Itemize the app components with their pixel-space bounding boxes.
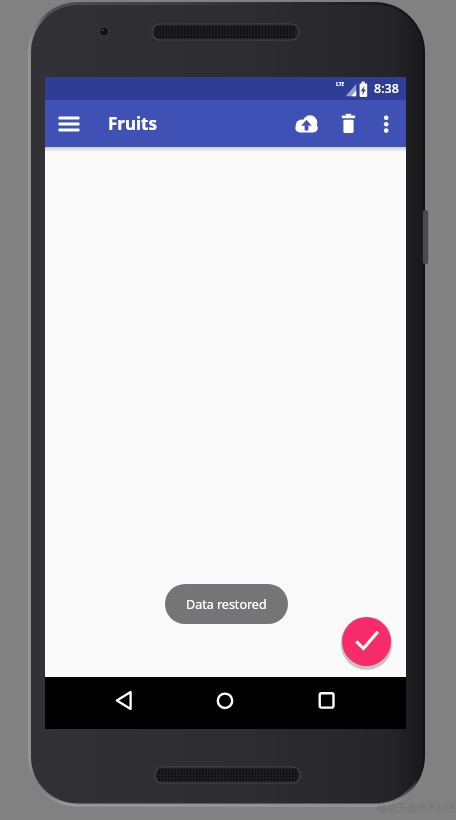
- button[interactable]: [287, 100, 328, 147]
- staticText: Fruits: [108, 112, 157, 135]
- button[interactable]: [295, 677, 359, 729]
- staticText: 移动开发技术社区: [377, 801, 456, 814]
- button[interactable]: [45, 100, 101, 147]
- button[interactable]: [329, 100, 370, 147]
- staticText: 8:38: [374, 80, 399, 97]
- button[interactable]: [370, 100, 406, 147]
- staticText: LTE: [336, 81, 345, 88]
- button[interactable]: [92, 677, 156, 729]
- button[interactable]: [193, 677, 257, 729]
- staticText: Data restored: [186, 596, 267, 613]
- button[interactable]: [342, 617, 391, 666]
